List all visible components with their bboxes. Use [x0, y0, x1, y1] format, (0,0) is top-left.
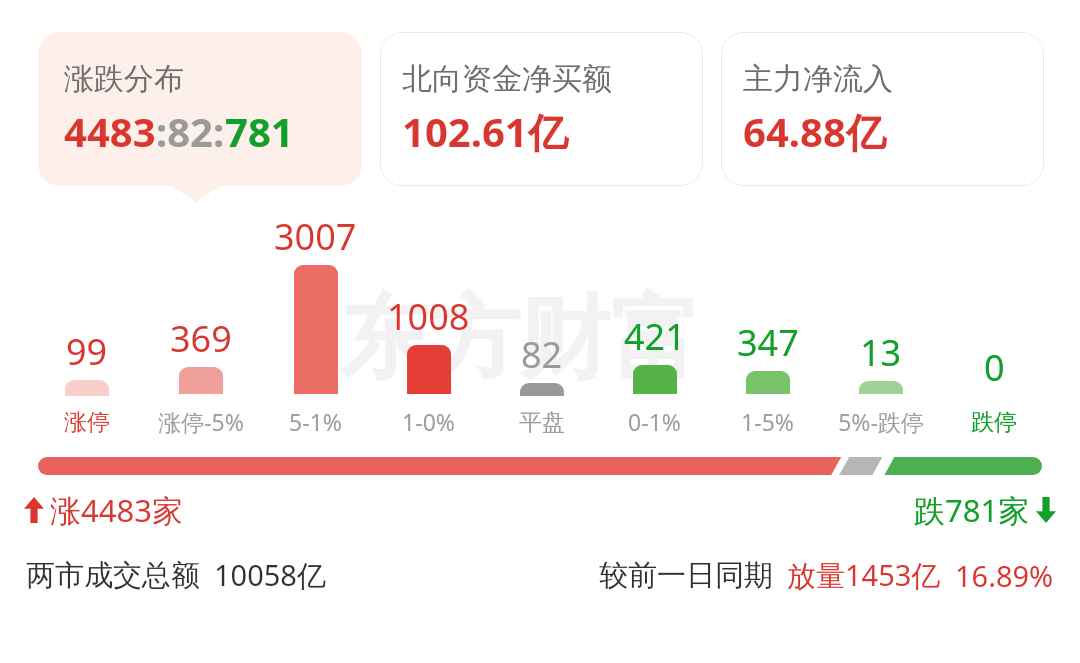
- staticText: 347: [737, 318, 799, 367]
- staticText: 北向资金净买额: [402, 60, 612, 98]
- button[interactable]: 99: [30, 202, 144, 437]
- button[interactable]: 跌781家: [914, 489, 1056, 531]
- staticText: 16.89%: [955, 556, 1054, 595]
- staticText: 跌停: [971, 408, 1017, 437]
- staticText: 13: [860, 328, 902, 377]
- button[interactable]: 主力净流入: [721, 32, 1044, 186]
- staticText: 涨停: [64, 408, 110, 437]
- button[interactable]: 347: [711, 202, 824, 437]
- staticText: 99: [66, 327, 108, 376]
- staticText: 4483: [64, 104, 156, 158]
- staticText: 64.88亿: [743, 104, 886, 159]
- staticText: 421: [624, 312, 686, 361]
- staticText: 0: [984, 343, 1005, 392]
- staticText: 主力净流入: [743, 60, 893, 98]
- staticText: 5-1%: [289, 406, 342, 437]
- staticText: 82: [521, 330, 563, 379]
- staticText: 东方财富: [340, 282, 700, 395]
- button[interactable]: 涨4483家: [24, 489, 183, 531]
- staticText: 3007: [274, 212, 357, 261]
- button[interactable]: 1008: [372, 202, 485, 437]
- staticText: 涨停-5%: [158, 406, 244, 437]
- staticText: 781: [225, 104, 294, 158]
- staticText: 5%-跌停: [838, 406, 924, 437]
- staticText: 0-1%: [628, 406, 681, 437]
- button[interactable]: 421: [598, 202, 711, 437]
- button[interactable]: 13: [824, 202, 937, 437]
- button[interactable]: 0: [937, 202, 1050, 437]
- staticText: 1008: [387, 292, 470, 341]
- staticText: 涨跌分布: [64, 60, 184, 98]
- button[interactable]: 北向资金净买额: [380, 32, 703, 186]
- staticText: 两市成交总额: [26, 557, 200, 594]
- staticText: 平盘: [519, 408, 565, 437]
- staticText: 1-0%: [402, 406, 455, 437]
- staticText: :82:: [156, 104, 225, 158]
- button[interactable]: 3007: [258, 202, 372, 437]
- staticText: 1-5%: [741, 406, 794, 437]
- button[interactable]: 涨跌分布: [38, 32, 362, 186]
- staticText: 102.61亿: [402, 104, 568, 159]
- staticText: 放量1453亿: [787, 555, 941, 595]
- staticText: 较前一日同期: [599, 557, 773, 594]
- staticText: 369: [170, 314, 232, 363]
- staticText: 10058亿: [214, 555, 326, 595]
- staticText: 涨4483家: [50, 489, 183, 531]
- button[interactable]: 82: [485, 202, 598, 437]
- button[interactable]: 369: [144, 202, 258, 437]
- staticText: 跌781家: [914, 489, 1030, 531]
